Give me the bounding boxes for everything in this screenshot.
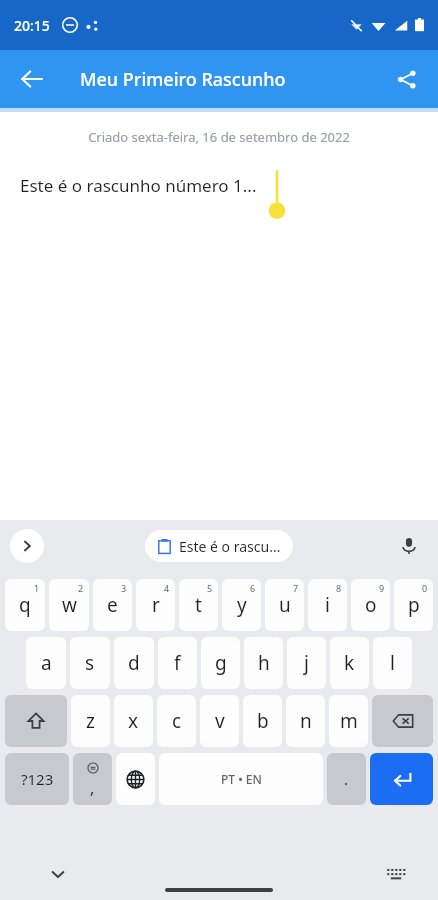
- staticText: q: [19, 592, 31, 618]
- button[interactable]: t: [179, 579, 218, 631]
- button[interactable]: Hide keyboard: [38, 854, 78, 894]
- button[interactable]: b: [243, 695, 282, 747]
- staticText: PT • EN: [221, 771, 262, 787]
- staticText: Este é o rascu...: [179, 537, 281, 556]
- staticText: u: [279, 592, 291, 618]
- staticText: y: [237, 592, 247, 618]
- staticText: 5: [207, 582, 213, 594]
- button[interactable]: d: [114, 637, 154, 689]
- staticText: b: [257, 708, 269, 734]
- button[interactable]: ?123: [5, 753, 69, 805]
- staticText: x: [128, 708, 139, 734]
- staticText: i: [325, 592, 330, 618]
- button[interactable]: p: [394, 579, 433, 631]
- staticText: m: [340, 708, 358, 734]
- button[interactable]: Back: [8, 55, 56, 103]
- button[interactable]: .: [327, 753, 366, 805]
- staticText: 8: [336, 582, 342, 594]
- staticText: a: [41, 650, 52, 676]
- button[interactable]: f: [158, 637, 197, 689]
- staticText: r: [152, 592, 160, 618]
- staticText: n: [300, 708, 312, 734]
- staticText: 9: [379, 582, 385, 594]
- button[interactable]: Shift: [5, 695, 67, 747]
- button[interactable]: m: [329, 695, 368, 747]
- button[interactable]: e: [93, 579, 132, 631]
- button[interactable]: Enter: [370, 753, 433, 805]
- staticText: z: [86, 708, 95, 734]
- staticText: o: [365, 592, 377, 618]
- button[interactable]: x: [114, 695, 153, 747]
- button[interactable]: n: [286, 695, 325, 747]
- button[interactable]: r: [136, 579, 175, 631]
- button[interactable]: Emoji: [73, 753, 112, 805]
- staticText: 7: [293, 582, 299, 594]
- button[interactable]: h: [244, 637, 283, 689]
- staticText: 3: [121, 582, 127, 594]
- staticText: t: [195, 592, 202, 618]
- button[interactable]: Backspace: [372, 695, 433, 747]
- staticText: .: [344, 769, 349, 789]
- button[interactable]: Share: [382, 55, 430, 103]
- button[interactable]: Este é o rascu...: [145, 530, 293, 562]
- button[interactable]: Expand: [10, 529, 44, 563]
- button[interactable]: PT • EN: [159, 753, 323, 805]
- staticText: p: [408, 592, 420, 618]
- staticText: Meu Primeiro Rascunho: [80, 67, 286, 92]
- button[interactable]: c: [157, 695, 196, 747]
- staticText: ,: [90, 777, 95, 799]
- staticText: 2: [78, 582, 84, 594]
- button[interactable]: a: [26, 637, 66, 689]
- staticText: e: [107, 592, 118, 618]
- button[interactable]: g: [201, 637, 240, 689]
- staticText: v: [215, 708, 225, 734]
- staticText: 20:15: [14, 16, 50, 35]
- staticText: ?123: [21, 769, 54, 789]
- staticText: l: [390, 650, 395, 676]
- button[interactable]: Voice input: [392, 529, 426, 563]
- button[interactable]: y: [222, 579, 261, 631]
- button[interactable]: q: [5, 579, 45, 631]
- staticText: s: [85, 650, 95, 676]
- button[interactable]: z: [71, 695, 110, 747]
- button[interactable]: k: [330, 637, 369, 689]
- staticText: g: [215, 650, 227, 676]
- staticText: 4: [164, 582, 170, 594]
- button[interactable]: o: [351, 579, 390, 631]
- button[interactable]: s: [70, 637, 110, 689]
- button[interactable]: u: [265, 579, 304, 631]
- staticText: c: [172, 708, 182, 734]
- staticText: k: [344, 650, 355, 676]
- button[interactable]: i: [308, 579, 347, 631]
- button[interactable]: j: [287, 637, 326, 689]
- staticText: Este é o rascunho número 1...: [20, 174, 257, 197]
- staticText: 1: [34, 582, 40, 594]
- staticText: h: [258, 650, 270, 676]
- staticText: j: [304, 650, 309, 676]
- button[interactable]: Language: [116, 753, 155, 805]
- button[interactable]: v: [200, 695, 239, 747]
- staticText: 6: [250, 582, 256, 594]
- staticText: 0: [422, 582, 428, 594]
- button[interactable]: w: [49, 579, 89, 631]
- staticText: w: [62, 592, 77, 618]
- staticText: d: [128, 650, 140, 676]
- staticText: Criado sexta-feira, 16 de setembro de 20…: [0, 128, 438, 146]
- button[interactable]: l: [373, 637, 412, 689]
- staticText: f: [174, 650, 181, 676]
- button[interactable]: Switch keyboard: [376, 854, 416, 894]
